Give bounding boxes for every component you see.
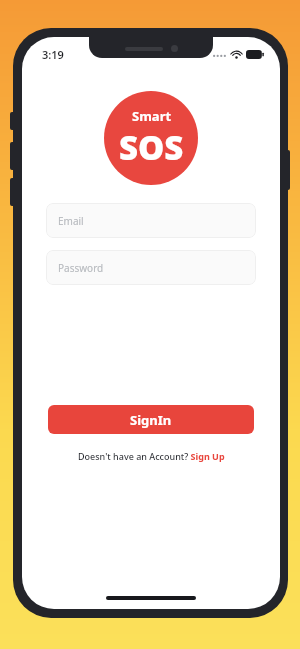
- staticText: SignIn: [130, 411, 172, 429]
- button[interactable]: Password: [46, 250, 256, 285]
- other: Battery: [246, 50, 264, 59]
- other: Wi-Fi: [231, 49, 242, 60]
- staticText: SOS: [119, 125, 184, 170]
- button[interactable]: SignIn: [48, 405, 254, 434]
- staticText: Password: [58, 261, 104, 275]
- staticText: 3:19: [42, 47, 64, 62]
- staticText: Smart: [132, 107, 172, 125]
- button[interactable]: Doesn't have an Account? Sign Up: [72, 448, 231, 464]
- staticText: Doesn't have an Account? Sign Up: [78, 450, 225, 462]
- button[interactable]: Email: [46, 203, 256, 238]
- staticText: Email: [58, 214, 84, 228]
